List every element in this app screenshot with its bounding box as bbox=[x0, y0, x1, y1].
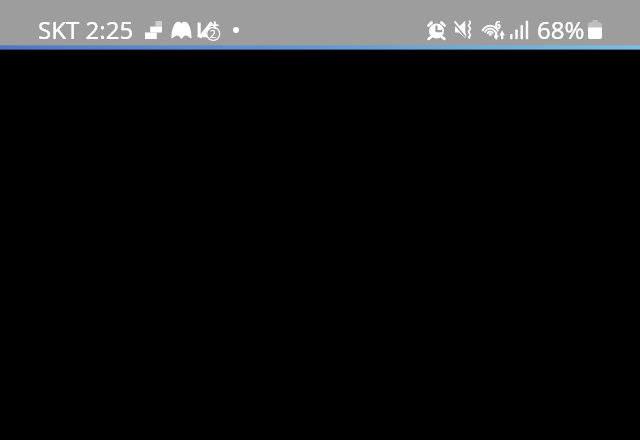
other: Stairs bbox=[145, 21, 162, 39]
other: Mute and vibrate bbox=[455, 20, 474, 39]
other: More bbox=[233, 27, 239, 33]
other: Silent mode with 2 notifications bbox=[195, 18, 221, 42]
staticText: 2 bbox=[210, 27, 216, 41]
other: Alarm bbox=[428, 20, 445, 39]
other: Wi-Fi 6 bbox=[480, 19, 505, 40]
staticText: 68% bbox=[537, 13, 585, 46]
other: Signal strength bbox=[509, 19, 527, 40]
staticText: 6 bbox=[495, 18, 501, 32]
other: Bixby bbox=[171, 21, 192, 39]
staticText: SKT 2:25 bbox=[38, 13, 134, 46]
other: Battery 68 percent bbox=[588, 20, 602, 39]
